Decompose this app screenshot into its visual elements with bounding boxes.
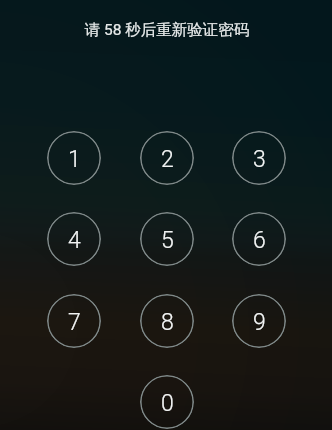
staticText: 请 58 秒后重新验证密码	[1, 20, 332, 40]
staticText: 2	[161, 146, 174, 173]
staticText: 3	[253, 146, 266, 173]
staticText: 5	[161, 227, 174, 254]
button[interactable]: Digit 6	[232, 212, 286, 266]
button[interactable]: Digit 9	[232, 294, 286, 348]
staticText: 9	[253, 309, 266, 336]
staticText: 6	[253, 227, 266, 254]
button[interactable]: Digit 3	[232, 131, 286, 185]
staticText: 4	[68, 227, 81, 254]
staticText: 0	[161, 390, 174, 417]
button[interactable]: Digit 8	[140, 294, 194, 348]
button[interactable]: Digit 1	[47, 131, 101, 185]
button[interactable]: Digit 5	[140, 212, 194, 266]
staticText: 8	[161, 309, 174, 336]
button[interactable]: Digit 0	[140, 375, 194, 429]
button[interactable]: Digit 4	[47, 212, 101, 266]
staticText: 7	[68, 309, 81, 336]
button[interactable]: Digit 2	[140, 131, 194, 185]
staticText: 1	[68, 146, 81, 173]
button[interactable]: Digit 7	[47, 294, 101, 348]
